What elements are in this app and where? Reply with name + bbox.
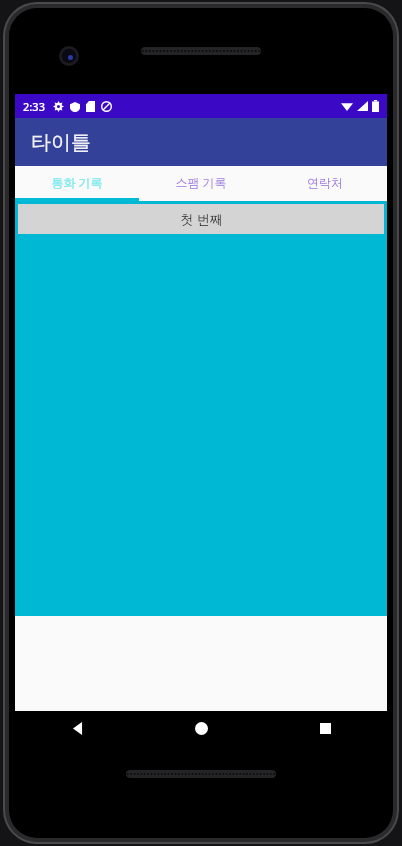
button[interactable]: 첫 번째: [18, 204, 384, 234]
staticText: 통화 기록: [51, 174, 103, 190]
staticText: 연락처: [307, 175, 343, 190]
button[interactable]: 통화 기록: [15, 166, 139, 198]
button[interactable]: 연락처: [263, 166, 387, 198]
staticText: 2:33: [23, 99, 45, 114]
staticText: 스팸 기록: [175, 174, 227, 190]
staticText: 첫 번째: [180, 210, 223, 228]
button[interactable]: Recent apps: [263, 711, 387, 746]
button[interactable]: Back: [15, 711, 139, 746]
button[interactable]: Home: [139, 711, 263, 746]
staticText: 타이틀: [31, 130, 91, 155]
button[interactable]: 스팸 기록: [139, 166, 263, 198]
